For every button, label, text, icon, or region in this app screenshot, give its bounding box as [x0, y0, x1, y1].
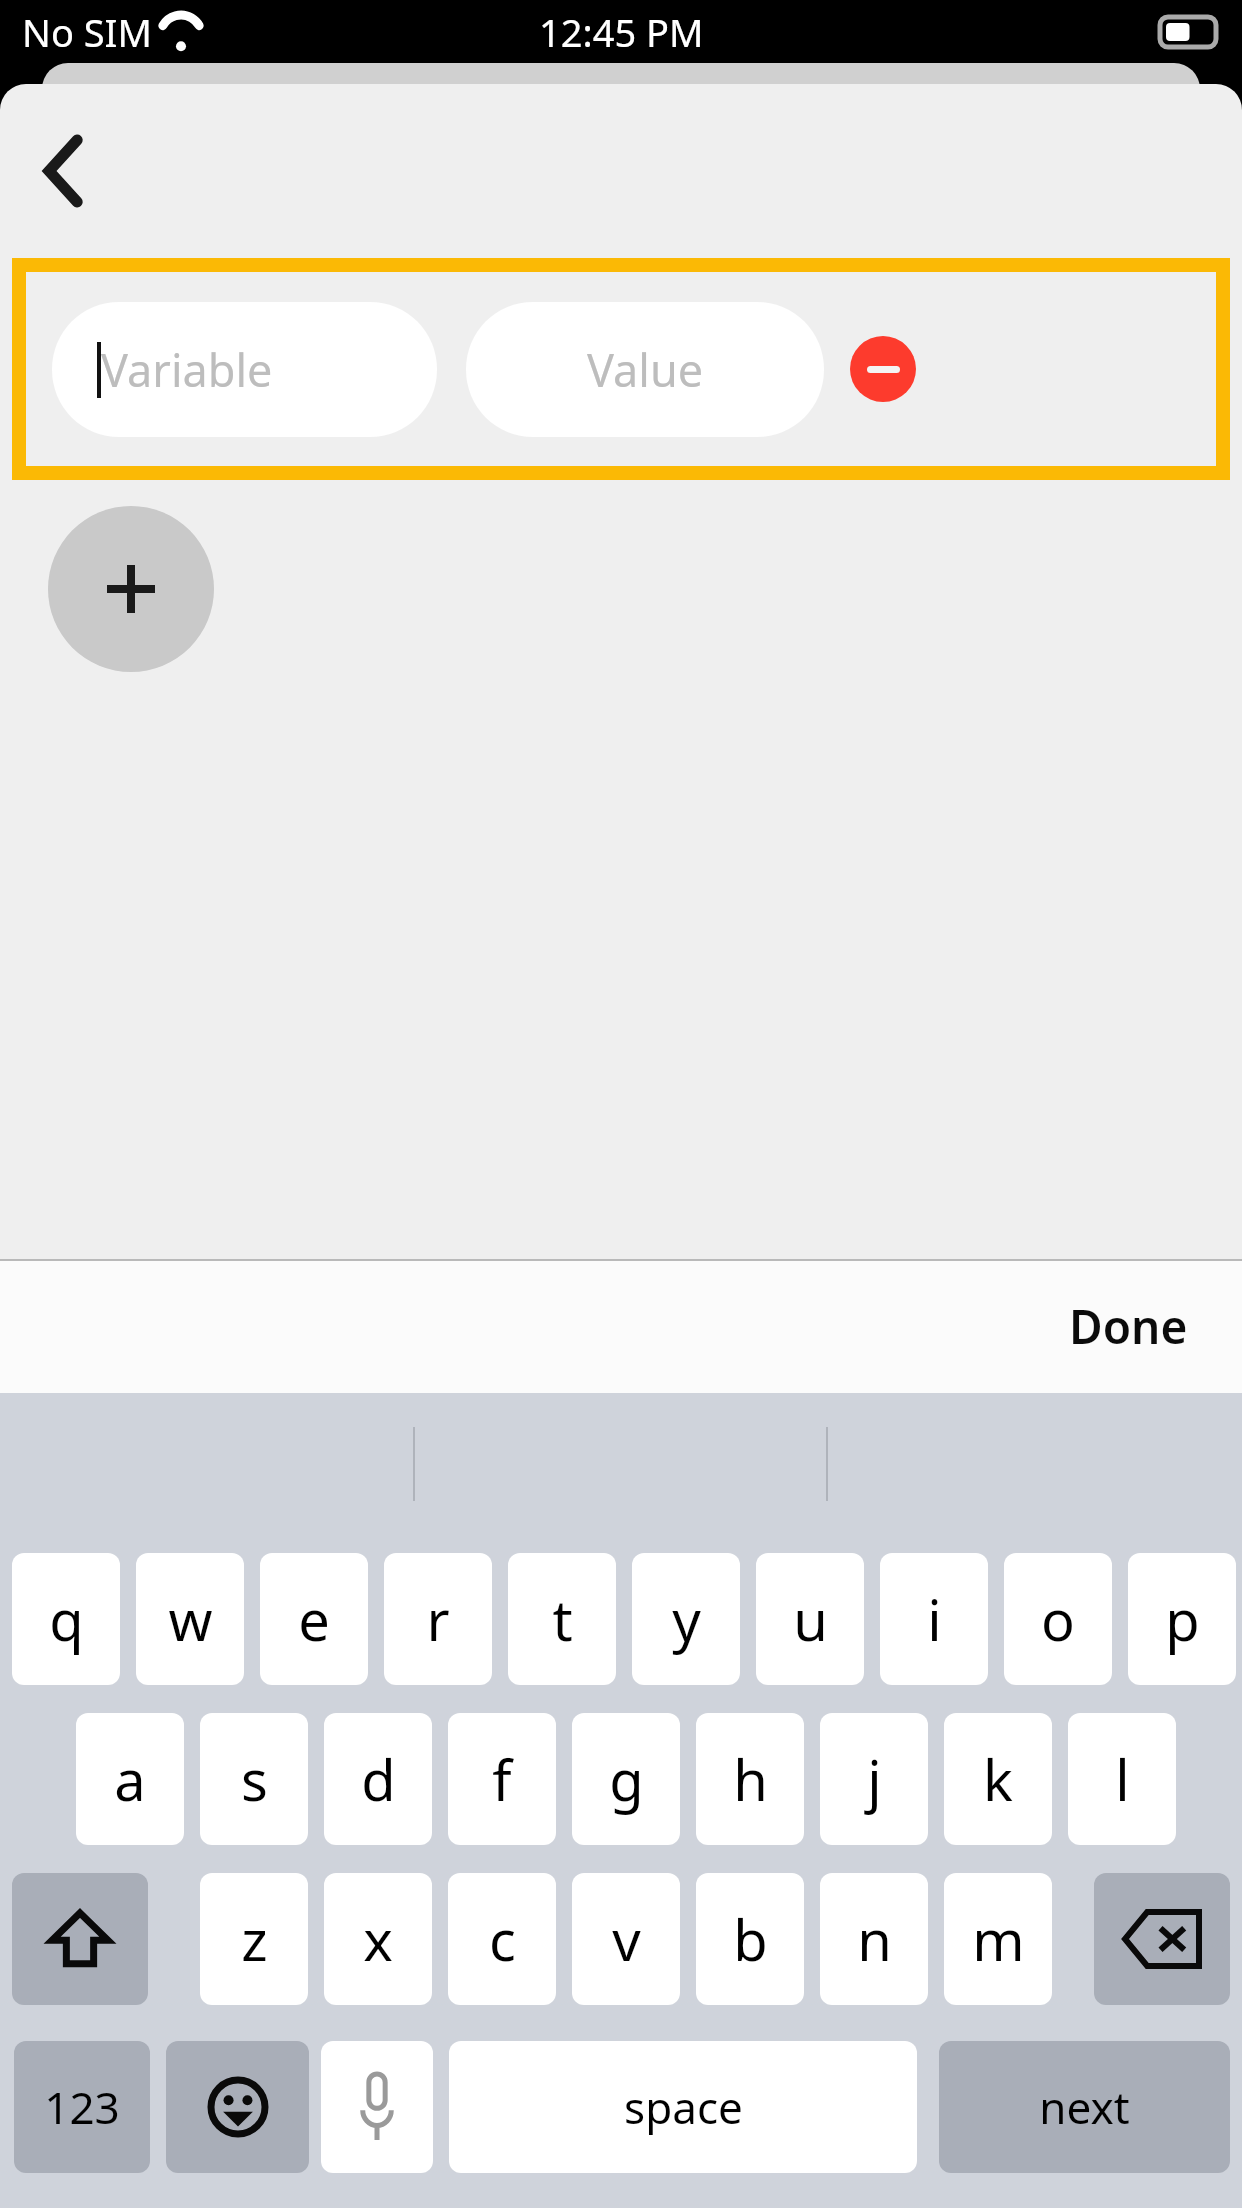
staticText: x: [363, 1901, 393, 1977]
button[interactable]: y: [632, 1553, 740, 1685]
button[interactable]: Value: [466, 302, 824, 437]
button[interactable]: Remove variable: [850, 336, 916, 402]
staticText: c: [489, 1901, 516, 1977]
button[interactable]: d: [324, 1713, 432, 1845]
button[interactable]: next: [939, 2041, 1230, 2173]
button[interactable]: o: [1004, 1553, 1112, 1685]
button[interactable]: x: [324, 1873, 432, 2005]
staticText: i: [927, 1581, 942, 1657]
button[interactable]: e: [260, 1553, 368, 1685]
button[interactable]: u: [756, 1553, 864, 1685]
button[interactable]: r: [384, 1553, 492, 1685]
button[interactable]: Back: [16, 116, 112, 226]
button[interactable]: l: [1068, 1713, 1176, 1845]
button[interactable]: n: [820, 1873, 928, 2005]
button[interactable]: a: [76, 1713, 184, 1845]
staticText: e: [298, 1581, 330, 1657]
staticText: b: [733, 1901, 768, 1977]
staticText: o: [1041, 1581, 1075, 1657]
button[interactable]: j: [820, 1713, 928, 1845]
button[interactable]: g: [572, 1713, 680, 1845]
staticText: m: [972, 1901, 1025, 1977]
button[interactable]: m: [944, 1873, 1052, 2005]
button[interactable]: q: [12, 1553, 120, 1685]
staticText: n: [857, 1901, 892, 1977]
button[interactable]: t: [508, 1553, 616, 1685]
staticText: g: [609, 1741, 644, 1817]
button[interactable]: k: [944, 1713, 1052, 1845]
button[interactable]: c: [448, 1873, 556, 2005]
button[interactable]: Done: [1055, 1285, 1202, 1368]
button[interactable]: Emoji: [166, 2041, 309, 2173]
staticText: 123: [44, 2077, 120, 2137]
staticText: No SIM: [22, 6, 152, 58]
staticText: q: [49, 1581, 84, 1657]
button[interactable]: i: [880, 1553, 988, 1685]
staticText: s: [241, 1741, 268, 1817]
staticText: t: [552, 1581, 573, 1657]
staticText: a: [114, 1741, 146, 1817]
staticText: d: [361, 1741, 396, 1817]
staticText: y: [672, 1581, 701, 1657]
staticText: k: [983, 1741, 1013, 1817]
staticText: z: [241, 1901, 268, 1977]
button[interactable]: z: [200, 1873, 308, 2005]
staticText: w: [168, 1581, 213, 1657]
staticText: u: [793, 1581, 828, 1657]
staticText: Done: [1069, 1295, 1188, 1358]
staticText: v: [612, 1901, 641, 1977]
staticText: f: [492, 1741, 512, 1817]
button[interactable]: Backspace: [1094, 1873, 1230, 2005]
staticText: r: [426, 1581, 450, 1657]
button[interactable]: h: [696, 1713, 804, 1845]
staticText: next: [1039, 2077, 1130, 2137]
button[interactable]: Add variable: [48, 506, 214, 672]
button[interactable]: p: [1128, 1553, 1236, 1685]
button[interactable]: Variable: [52, 302, 437, 437]
staticText: j: [867, 1741, 882, 1817]
button[interactable]: 123: [14, 2041, 150, 2173]
button[interactable]: b: [696, 1873, 804, 2005]
button[interactable]: Shift: [12, 1873, 148, 2005]
staticText: 12:45 PM: [539, 6, 704, 58]
staticText: h: [733, 1741, 768, 1817]
staticText: l: [1115, 1741, 1130, 1817]
staticText: p: [1165, 1581, 1200, 1657]
button[interactable]: s: [200, 1713, 308, 1845]
button[interactable]: f: [448, 1713, 556, 1845]
staticText: Value: [587, 339, 704, 400]
staticText: space: [624, 2077, 743, 2137]
staticText: Variable: [101, 339, 273, 400]
button[interactable]: v: [572, 1873, 680, 2005]
button[interactable]: space: [449, 2041, 917, 2173]
button[interactable]: Dictation: [321, 2041, 433, 2173]
button[interactable]: w: [136, 1553, 244, 1685]
